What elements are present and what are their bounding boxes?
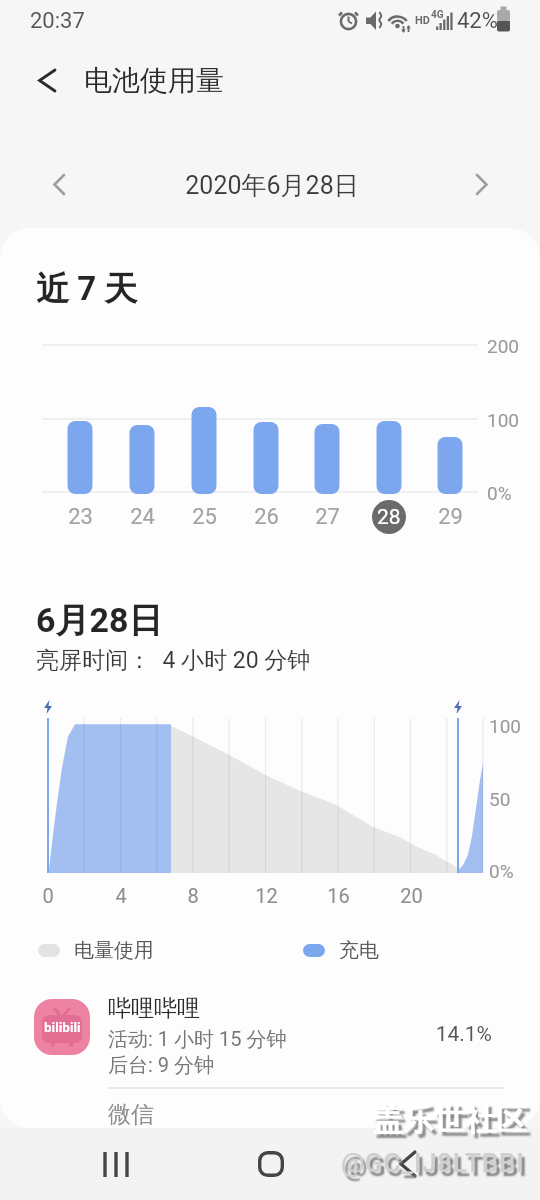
staticText: 12 — [255, 884, 278, 907]
staticText: 200 — [487, 335, 520, 357]
staticText: 16 — [327, 884, 350, 907]
button[interactable] — [84, 1134, 150, 1194]
button[interactable] — [238, 1134, 304, 1194]
button[interactable] — [374, 1134, 440, 1194]
staticText: 4 — [115, 884, 127, 907]
staticText: 20:37 — [30, 8, 85, 34]
staticText: 2020年6月28日 — [185, 170, 359, 201]
staticText: 50 — [489, 788, 511, 810]
staticText: 100 — [487, 409, 520, 431]
staticText: 20 — [400, 884, 423, 907]
staticText: 活动: 1 小时 15 分钟 — [108, 1027, 287, 1052]
staticText: 27 — [315, 504, 340, 530]
staticText: 亮屏时间： 4 小时 20 分钟 — [36, 646, 311, 675]
staticText: 4G — [431, 9, 444, 21]
staticText: 0% — [489, 860, 514, 882]
staticText: bilibili — [44, 1019, 81, 1035]
button[interactable] — [24, 56, 68, 104]
staticText: 充电 — [339, 938, 379, 963]
staticText: 后台: 9 分钟 — [108, 1053, 215, 1078]
staticText: 25 — [192, 504, 217, 530]
button[interactable]: 28 — [372, 500, 406, 534]
button[interactable]: bilibili — [16, 985, 524, 1080]
button[interactable] — [36, 162, 80, 206]
staticText: 100 — [489, 715, 522, 737]
button[interactable] — [460, 162, 504, 206]
staticText: 26 — [254, 504, 279, 530]
staticText: 电池使用量 — [84, 63, 224, 98]
staticText: 0% — [487, 482, 512, 504]
staticText: 24 — [130, 504, 155, 530]
staticText: 42% — [457, 8, 498, 34]
staticText: 0 — [42, 884, 54, 907]
staticText: 盖乐世社区 — [372, 1100, 527, 1139]
staticText: 电量使用 — [74, 938, 154, 963]
staticText: 微信 — [108, 1100, 154, 1129]
staticText: @GC_IJ8LTBBI — [341, 1148, 525, 1178]
staticText: 28 — [377, 505, 401, 530]
staticText: 8 — [187, 884, 199, 907]
staticText: 23 — [68, 504, 93, 530]
button[interactable]: 微信 — [16, 1092, 524, 1128]
staticText: HD — [415, 14, 430, 27]
staticText: 哔哩哔哩 — [108, 994, 200, 1023]
staticText: 6月28日 — [36, 599, 163, 642]
staticText: 29 — [438, 504, 463, 530]
staticText: 近 7 天 — [36, 268, 138, 310]
staticText: 14.1% — [435, 1022, 492, 1047]
